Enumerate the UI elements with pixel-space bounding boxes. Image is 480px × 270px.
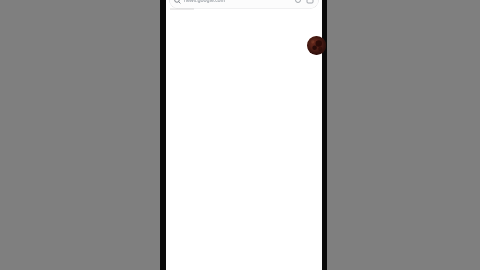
button[interactable]: Tabs <box>306 0 314 4</box>
button[interactable]: Profile image <box>307 36 326 55</box>
other: Search <box>174 0 181 4</box>
button[interactable]: Reload page <box>294 0 302 4</box>
staticText: news.google.com <box>184 0 226 4</box>
button[interactable]: Search <box>169 0 319 9</box>
